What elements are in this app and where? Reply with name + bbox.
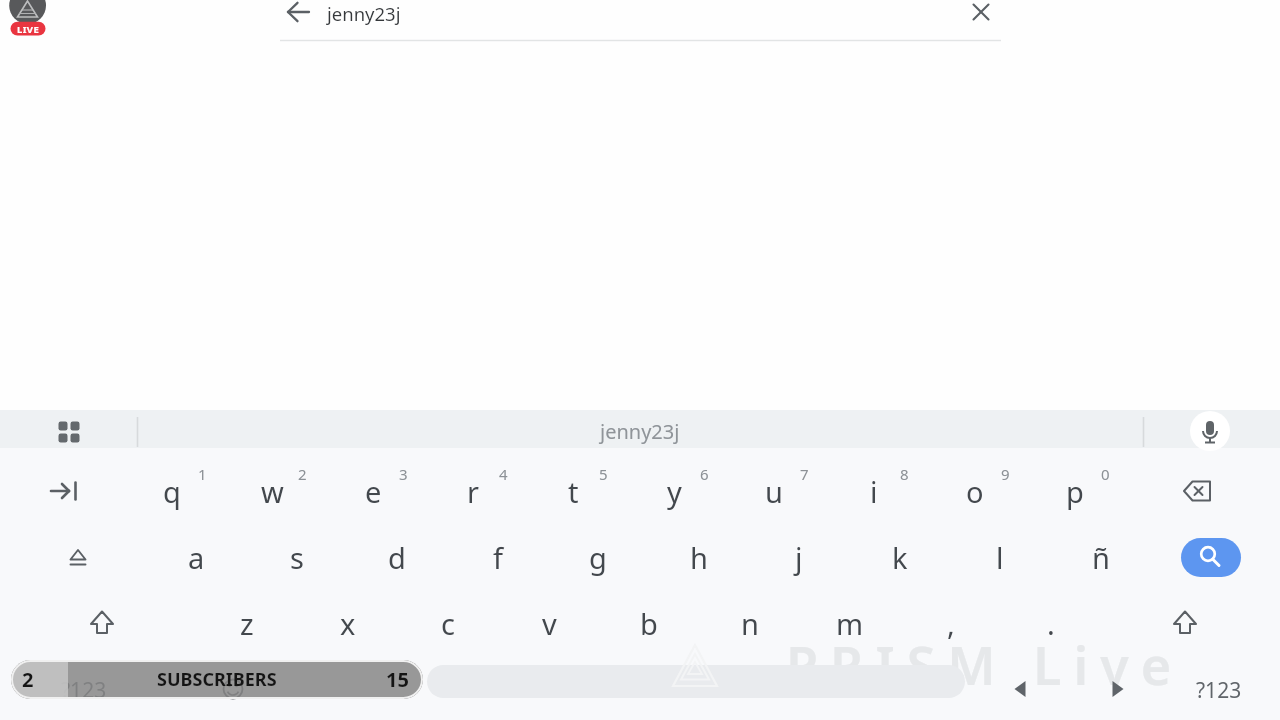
- button[interactable]: [960, 0, 1002, 42]
- button[interactable]: [1078, 659, 1168, 720]
- staticText: s: [290, 538, 304, 577]
- staticText: a: [188, 538, 205, 577]
- staticText: l: [996, 538, 1004, 577]
- staticText: 2: [22, 666, 34, 693]
- staticText: PRISM Live: [786, 629, 1184, 700]
- button[interactable]: .: [1002, 591, 1100, 655]
- staticText: 0: [1101, 464, 1110, 484]
- staticText: n: [741, 604, 759, 643]
- staticText: v: [542, 604, 557, 643]
- button[interactable]: g: [549, 525, 647, 589]
- button[interactable]: [427, 659, 965, 720]
- button[interactable]: q: [123, 459, 221, 523]
- staticText: d: [388, 538, 406, 577]
- button[interactable]: h: [650, 525, 748, 589]
- button[interactable]: j: [750, 525, 848, 589]
- button[interactable]: [52, 590, 152, 656]
- button[interactable]: p: [1026, 459, 1124, 523]
- button[interactable]: [277, 0, 319, 42]
- button[interactable]: u: [725, 459, 823, 523]
- button[interactable]: l: [951, 525, 1049, 589]
- button[interactable]: [980, 659, 1070, 720]
- button[interactable]: t: [524, 459, 622, 523]
- staticText: x: [340, 604, 356, 643]
- staticText: 2: [298, 464, 307, 484]
- staticText: u: [765, 472, 783, 511]
- staticText: 1: [198, 464, 207, 484]
- staticText: 9: [1001, 464, 1010, 484]
- button[interactable]: [28, 524, 128, 590]
- button[interactable]: 2: [11, 660, 423, 699]
- button[interactable]: v: [500, 591, 598, 655]
- staticText: g: [589, 538, 607, 577]
- staticText: ?123: [61, 676, 107, 705]
- staticText: r: [467, 472, 479, 511]
- staticText: .: [1047, 604, 1055, 643]
- button[interactable]: [1160, 524, 1260, 590]
- staticText: q: [163, 472, 181, 511]
- button[interactable]: b: [600, 591, 698, 655]
- staticText: k: [892, 538, 908, 577]
- staticText: m: [836, 604, 864, 643]
- button[interactable]: ,: [902, 591, 1000, 655]
- button[interactable]: o: [926, 459, 1024, 523]
- staticText: p: [1066, 472, 1084, 511]
- staticText: o: [966, 472, 984, 511]
- staticText: SUBSCRIBERS: [157, 667, 277, 692]
- button[interactable]: w: [223, 459, 321, 523]
- button[interactable]: i: [825, 459, 923, 523]
- button[interactable]: m: [801, 591, 899, 655]
- button[interactable]: r: [424, 459, 522, 523]
- staticText: e: [365, 472, 382, 511]
- staticText: i: [870, 472, 878, 511]
- staticText: ?123: [1196, 676, 1242, 705]
- staticText: t: [568, 472, 579, 511]
- button[interactable]: f: [449, 525, 547, 589]
- button[interactable]: y: [625, 459, 723, 523]
- staticText: 4: [499, 464, 508, 484]
- button[interactable]: [47, 410, 91, 448]
- button[interactable]: a: [147, 525, 245, 589]
- button[interactable]: [1135, 590, 1235, 656]
- button[interactable]: ?123: [24, 660, 144, 720]
- staticText: 3: [399, 464, 408, 484]
- button[interactable]: [183, 659, 283, 720]
- button[interactable]: c: [399, 591, 497, 655]
- staticText: LIVE: [17, 23, 40, 36]
- staticText: b: [640, 604, 658, 643]
- staticText: f: [493, 538, 503, 577]
- button[interactable]: k: [851, 525, 949, 589]
- staticText: jenny23j: [600, 418, 680, 445]
- staticText: 15: [386, 666, 409, 693]
- button[interactable]: [1188, 410, 1232, 448]
- staticText: y: [667, 472, 682, 511]
- button[interactable]: e: [324, 459, 422, 523]
- staticText: 8: [900, 464, 909, 484]
- staticText: 5: [599, 464, 608, 484]
- staticText: 6: [700, 464, 709, 484]
- button[interactable]: x: [299, 591, 397, 655]
- staticText: ,: [947, 604, 955, 643]
- button[interactable]: n: [701, 591, 799, 655]
- button[interactable]: z: [198, 591, 296, 655]
- button[interactable]: ?123: [1164, 660, 1274, 720]
- staticText: c: [441, 604, 455, 643]
- staticText: h: [690, 538, 708, 577]
- button[interactable]: [14, 458, 114, 524]
- staticText: j: [795, 538, 803, 577]
- staticText: z: [240, 604, 254, 643]
- staticText: 7: [800, 464, 809, 484]
- button[interactable]: s: [248, 525, 346, 589]
- button[interactable]: d: [348, 525, 446, 589]
- button[interactable]: [1147, 458, 1247, 524]
- staticText: jenny23j: [327, 1, 401, 26]
- button[interactable]: ñ: [1052, 525, 1150, 589]
- staticText: w: [261, 472, 284, 511]
- staticText: ñ: [1092, 538, 1110, 577]
